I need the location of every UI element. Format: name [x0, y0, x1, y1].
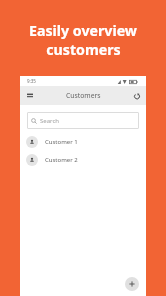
staticText: Customer 1 — [45, 138, 78, 146]
staticText: Search — [40, 117, 59, 125]
button[interactable]: Add customer — [125, 277, 139, 291]
button[interactable]: Customer 2 — [20, 151, 146, 168]
button[interactable]: Menu — [20, 86, 39, 105]
button[interactable]: Refresh — [127, 86, 146, 105]
staticText: Easily overview — [29, 21, 137, 40]
button[interactable]: Search — [27, 112, 139, 129]
staticText: 9:35 — [27, 78, 36, 84]
button[interactable]: Customer 1 — [20, 133, 146, 150]
staticText: Customers — [66, 91, 101, 100]
staticText: Customer 2 — [45, 156, 78, 164]
staticText: customers — [46, 40, 121, 59]
